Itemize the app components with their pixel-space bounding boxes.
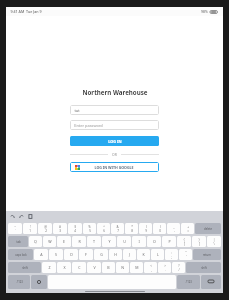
staticText: shift bbox=[201, 266, 207, 270]
button[interactable]: caps lock bbox=[8, 249, 33, 260]
button[interactable]: Undo bbox=[10, 214, 15, 219]
button[interactable]: * bbox=[125, 223, 138, 234]
staticText: + bbox=[187, 225, 189, 229]
button[interactable]: & bbox=[111, 223, 124, 234]
button[interactable]: @ bbox=[38, 223, 52, 234]
button[interactable]: U bbox=[117, 236, 131, 247]
button[interactable]: } bbox=[192, 236, 206, 247]
button[interactable]: Redo bbox=[19, 214, 24, 219]
button[interactable]: > bbox=[158, 262, 171, 273]
button[interactable]: T bbox=[87, 236, 101, 247]
staticText: G bbox=[100, 252, 103, 257]
staticText: X bbox=[63, 265, 66, 270]
button[interactable]: tut bbox=[70, 105, 159, 115]
button[interactable]: % bbox=[83, 223, 96, 234]
staticText: 9 bbox=[145, 229, 147, 233]
button[interactable]: K bbox=[137, 249, 150, 260]
button[interactable]: $ bbox=[68, 223, 82, 234]
button[interactable]: I bbox=[132, 236, 146, 247]
staticText: 7 bbox=[117, 229, 119, 233]
button[interactable]: P bbox=[162, 236, 176, 247]
button[interactable]: ? bbox=[172, 262, 185, 273]
staticText: 98% bbox=[201, 9, 208, 14]
staticText: \ bbox=[213, 242, 215, 246]
staticText: 9:41 AM Tue Jan 9 bbox=[10, 9, 42, 14]
staticText: ' bbox=[186, 255, 187, 259]
button[interactable]: O bbox=[147, 236, 161, 247]
staticText: M bbox=[135, 265, 139, 270]
button[interactable]: M bbox=[130, 262, 143, 273]
button[interactable]: S bbox=[49, 249, 63, 260]
button[interactable]: C bbox=[72, 262, 86, 273]
staticText: Northern Warehouse bbox=[82, 88, 148, 96]
button[interactable]: _ bbox=[167, 223, 180, 234]
button[interactable]: " bbox=[179, 249, 192, 260]
button[interactable]: ( bbox=[139, 223, 152, 234]
button[interactable]: A bbox=[34, 249, 48, 260]
button[interactable]: shift bbox=[8, 262, 41, 273]
staticText: : bbox=[171, 251, 172, 255]
button[interactable]: { bbox=[177, 236, 191, 247]
staticText: ! bbox=[30, 225, 31, 229]
button[interactable]: | bbox=[207, 236, 221, 247]
staticText: 5 bbox=[89, 229, 91, 233]
staticText: } bbox=[198, 238, 200, 242]
button[interactable]: L bbox=[151, 249, 164, 260]
button[interactable]: Y bbox=[102, 236, 116, 247]
button[interactable]: Enter password bbox=[70, 120, 159, 130]
button[interactable]: W bbox=[43, 236, 56, 247]
staticText: | bbox=[213, 238, 215, 242]
staticText: tab bbox=[16, 240, 21, 244]
button[interactable]: .?123 bbox=[8, 275, 30, 289]
button[interactable]: + bbox=[181, 223, 194, 234]
button[interactable]: E bbox=[57, 236, 71, 247]
button[interactable]: LOG IN WITH GOOGLE bbox=[70, 162, 159, 172]
button[interactable]: V bbox=[87, 262, 101, 273]
button[interactable]: X bbox=[57, 262, 71, 273]
button[interactable]: return bbox=[193, 249, 221, 260]
staticText: ` bbox=[15, 229, 16, 233]
staticText: 8 bbox=[131, 229, 133, 233]
staticText: V bbox=[93, 265, 96, 270]
button[interactable]: tab bbox=[8, 236, 28, 247]
button[interactable]: delete bbox=[195, 223, 221, 234]
staticText: F bbox=[85, 252, 87, 257]
button[interactable]: # bbox=[53, 223, 67, 234]
button[interactable]: ~ bbox=[8, 223, 22, 234]
staticText: D bbox=[70, 252, 73, 257]
button[interactable]: Q bbox=[29, 236, 42, 247]
button[interactable]: ) bbox=[153, 223, 166, 234]
button[interactable]: H bbox=[109, 249, 122, 260]
button[interactable]: .?123 bbox=[177, 275, 200, 289]
button[interactable]: G bbox=[94, 249, 108, 260]
button[interactable]: shift bbox=[186, 262, 221, 273]
staticText: R bbox=[78, 239, 81, 244]
button[interactable]: ! bbox=[23, 223, 37, 234]
button[interactable]: B bbox=[102, 262, 115, 273]
button[interactable]: D bbox=[64, 249, 78, 260]
button[interactable]: J bbox=[123, 249, 136, 260]
staticText: _ bbox=[173, 225, 175, 229]
staticText: Z bbox=[48, 265, 51, 270]
button[interactable]: LOG IN bbox=[70, 136, 159, 146]
button[interactable]: Z bbox=[42, 262, 56, 273]
button[interactable]: < bbox=[144, 262, 157, 273]
staticText: C bbox=[78, 265, 81, 270]
button[interactable]: F bbox=[79, 249, 93, 260]
button[interactable]: ^ bbox=[97, 223, 110, 234]
button[interactable]: Emoji bbox=[31, 275, 47, 289]
staticText: " bbox=[185, 251, 187, 255]
button[interactable]: R bbox=[72, 236, 86, 247]
staticText: 6 bbox=[103, 229, 105, 233]
button[interactable]: Hide keyboard bbox=[201, 275, 221, 289]
staticText: J bbox=[129, 252, 130, 257]
button[interactable]: : bbox=[165, 249, 178, 260]
staticText: . bbox=[165, 268, 166, 272]
button[interactable]: Paste bbox=[28, 214, 33, 219]
staticText: .?123 bbox=[185, 280, 192, 284]
staticText: OR bbox=[112, 152, 117, 157]
staticText: .?123 bbox=[16, 280, 23, 284]
button[interactable]: N bbox=[116, 262, 129, 273]
staticText: 1 bbox=[29, 229, 31, 233]
